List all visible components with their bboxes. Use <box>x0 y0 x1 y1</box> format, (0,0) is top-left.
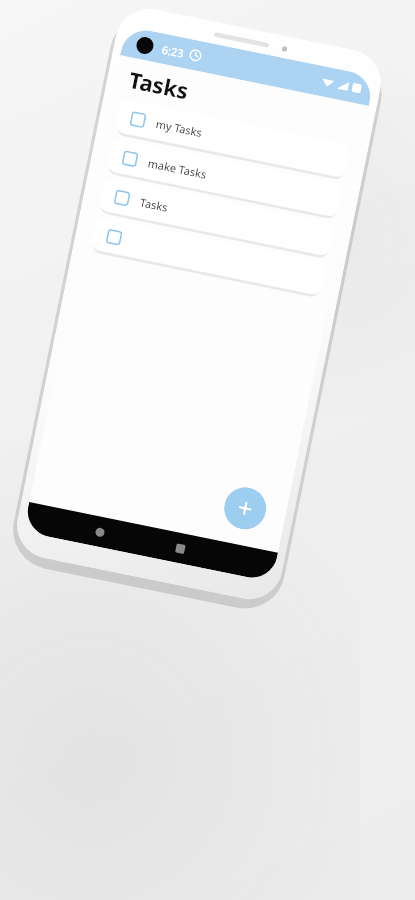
button[interactable]: Toggle make Tasks <box>107 138 343 218</box>
button[interactable]: Toggle my Tasks <box>125 106 151 132</box>
button[interactable]: Toggle task <box>101 224 127 250</box>
staticText: 6:23 <box>161 42 185 61</box>
button[interactable]: Toggle Tasks <box>109 184 135 210</box>
staticText: make Tasks <box>147 155 208 182</box>
button[interactable]: Toggle make Tasks <box>117 145 143 171</box>
staticText: Tasks <box>126 64 191 105</box>
button[interactable]: Toggle Tasks <box>99 177 335 257</box>
button[interactable]: Toggle my Tasks <box>115 98 351 178</box>
button[interactable]: Add task <box>220 483 270 533</box>
staticText: my Tasks <box>155 116 204 140</box>
staticText: Tasks <box>139 194 169 215</box>
button[interactable]: Home <box>84 516 115 547</box>
button[interactable]: Recent apps <box>165 533 195 563</box>
button[interactable]: Toggle task <box>91 216 327 296</box>
